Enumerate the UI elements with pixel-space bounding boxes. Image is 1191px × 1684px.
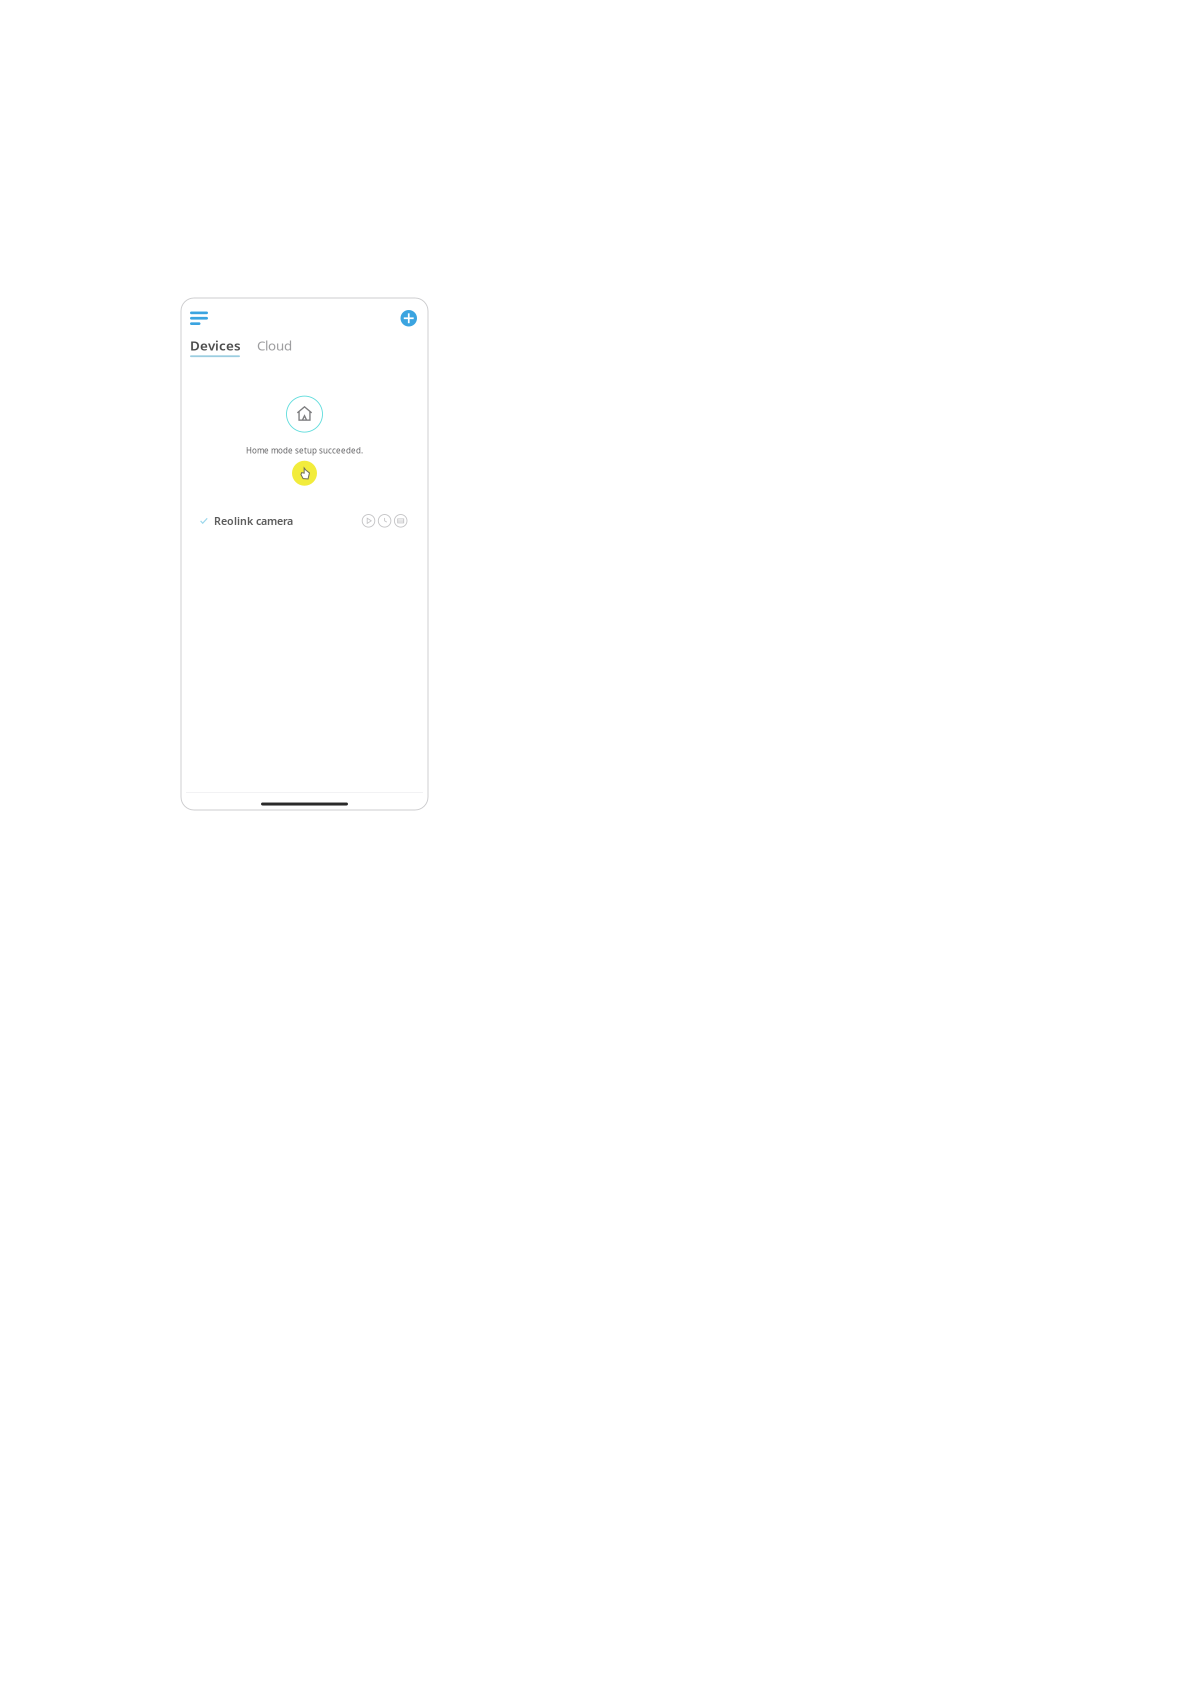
button[interactable]: Play bbox=[362, 514, 375, 527]
staticText: Home mode setup succeeded. bbox=[246, 445, 363, 456]
button[interactable]: Cloud bbox=[250, 336, 299, 357]
button[interactable]: Devices bbox=[190, 336, 250, 357]
button[interactable]: History bbox=[378, 514, 391, 527]
staticText: Devices bbox=[190, 336, 241, 354]
button[interactable]: Add device bbox=[396, 306, 421, 330]
button[interactable]: Settings bbox=[394, 514, 407, 527]
button[interactable]: Menu bbox=[186, 307, 212, 329]
staticText: Reolink camera bbox=[214, 514, 293, 528]
staticText: Cloud bbox=[257, 336, 292, 354]
